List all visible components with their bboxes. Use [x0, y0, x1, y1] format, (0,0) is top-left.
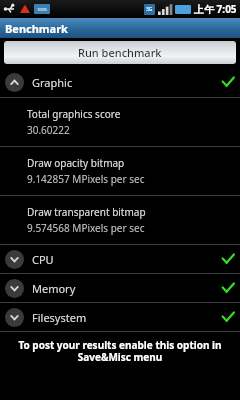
button[interactable]: Run benchmark — [4, 41, 236, 64]
staticText: 100% — [37, 7, 48, 12]
staticText: 上午 7:05 — [194, 2, 237, 16]
button[interactable]: Expand Memory — [0, 274, 240, 302]
button[interactable]: Collapse Graphic — [0, 67, 240, 97]
staticText: Memory — [32, 281, 76, 296]
staticText: Draw transparent bitmap — [27, 205, 146, 219]
staticText: Draw opacity bitmap — [27, 156, 125, 170]
staticText: 30.60222 — [27, 123, 70, 137]
staticText: Benchmark — [5, 21, 68, 36]
button[interactable]: Expand Filesystem — [0, 303, 240, 331]
staticText: Graphic — [32, 75, 73, 90]
button[interactable]: Draw opacity bitmap — [0, 147, 240, 195]
staticText: Run benchmark — [78, 45, 162, 60]
other: Expand Filesystem — [5, 308, 24, 327]
staticText: 9.574568 MPixels per sec — [27, 221, 145, 235]
button[interactable]: Expand CPU — [0, 245, 240, 273]
button[interactable]: Draw transparent bitmap — [0, 196, 240, 244]
staticText: 9.142857 MPixels per sec — [27, 172, 145, 186]
staticText: CPU — [32, 252, 54, 267]
button[interactable]: Total graphics score — [0, 98, 240, 146]
staticText: Total graphics score — [27, 107, 121, 121]
other: Collapse Graphic — [5, 73, 24, 92]
staticText: Filesystem — [32, 310, 87, 325]
other: Expand CPU — [5, 250, 24, 269]
staticText: To post your results enable this option … — [0, 338, 240, 364]
staticText: 3G — [146, 6, 153, 13]
other: Expand Memory — [5, 279, 24, 298]
